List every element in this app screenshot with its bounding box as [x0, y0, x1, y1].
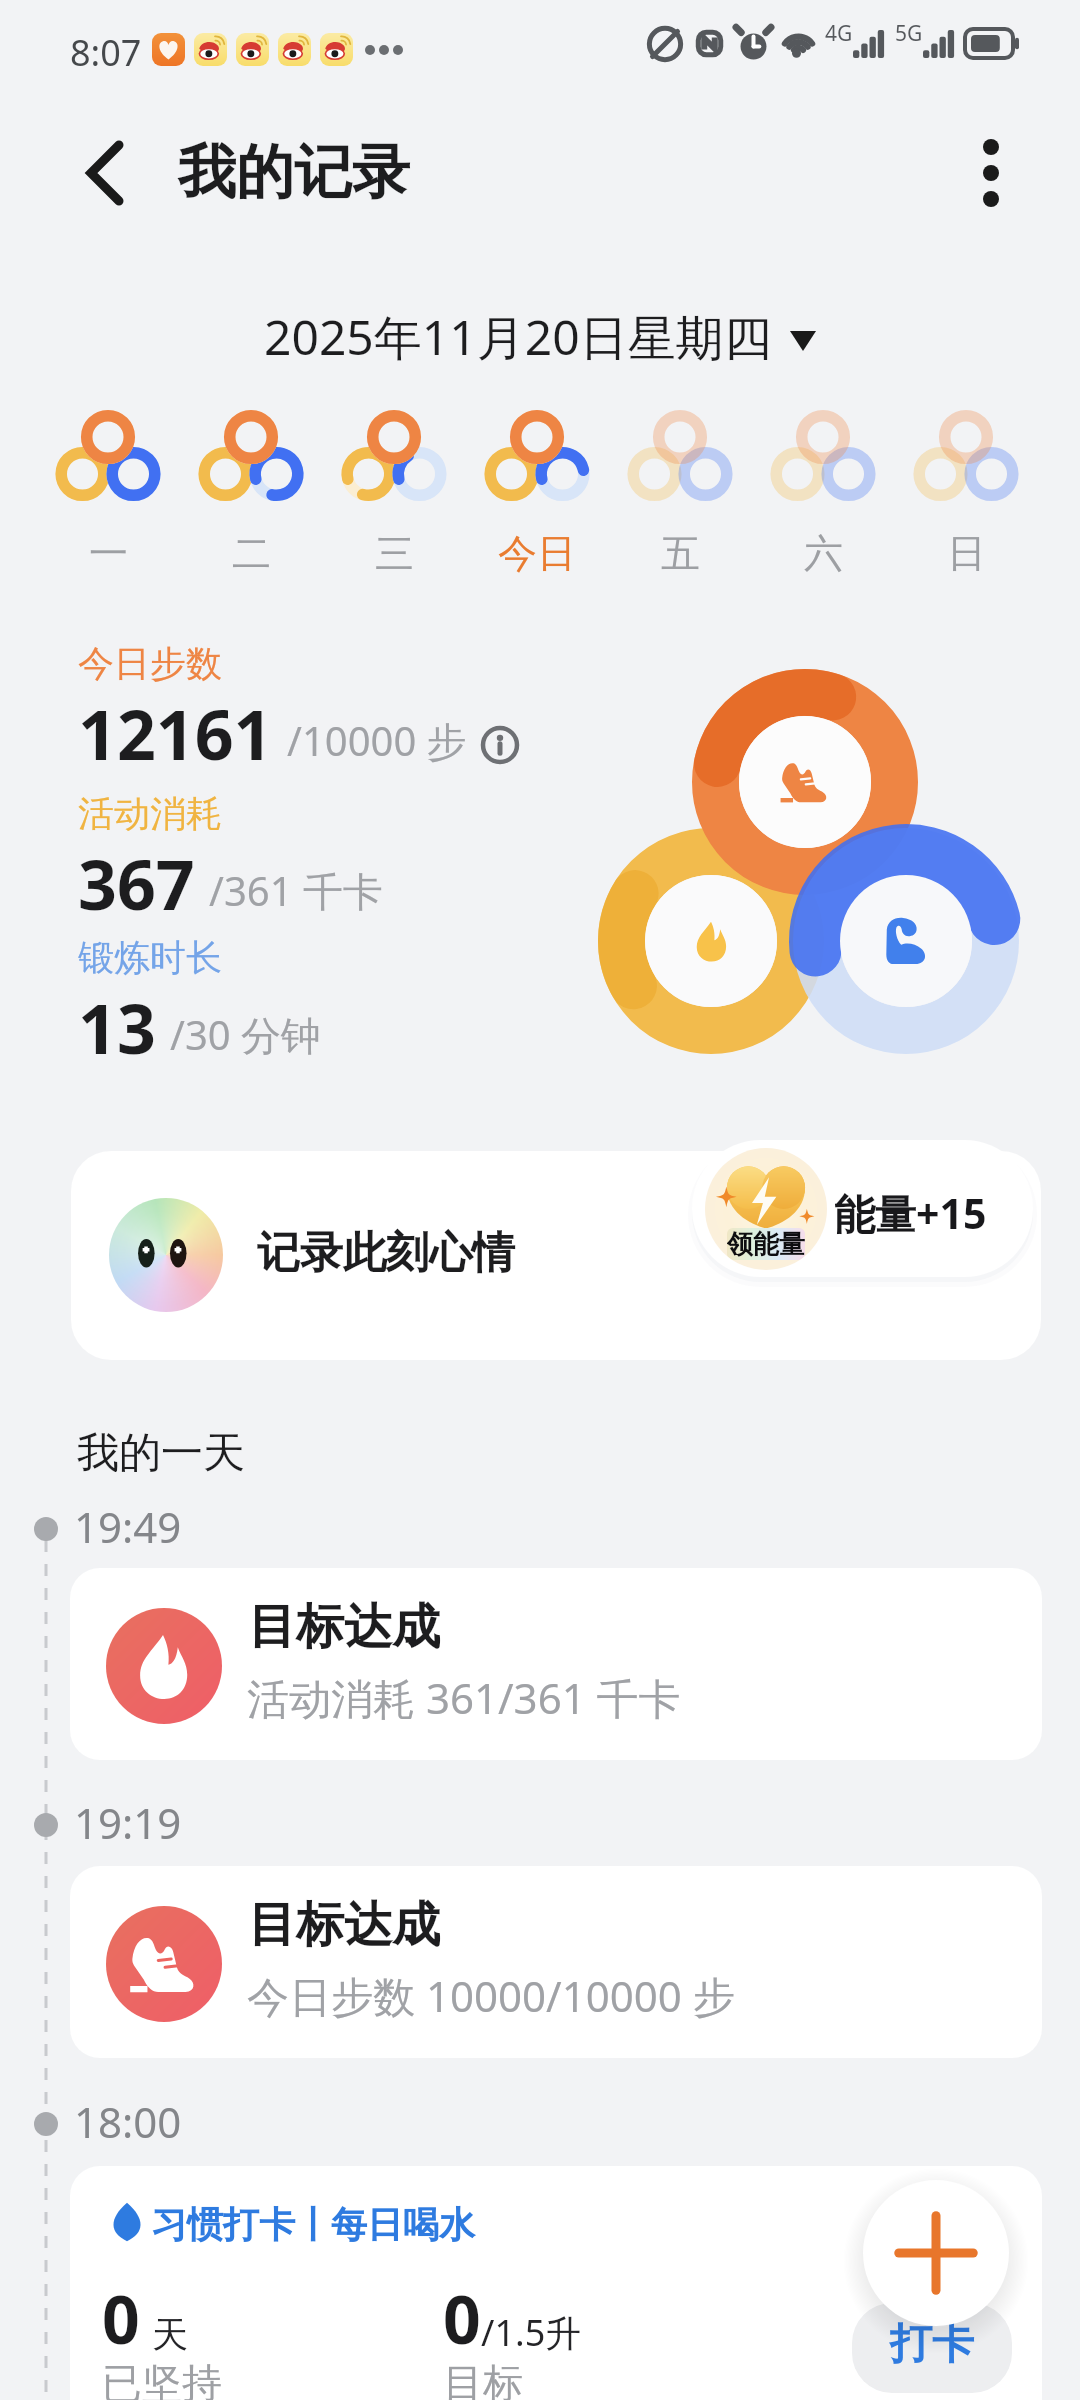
staticText: 12161: [78, 687, 273, 780]
button[interactable]: 2025年11月20日星期四: [258, 300, 822, 374]
button[interactable]: 领能量 能量+15: [692, 1140, 1033, 1277]
staticText: 打卡: [890, 2318, 974, 2371]
staticText: /361 千卡: [209, 863, 383, 918]
button[interactable]: 二: [181, 388, 321, 578]
staticText: 目标: [443, 2358, 523, 2400]
button[interactable]: 打卡: [852, 2303, 1012, 2393]
staticText: 已坚持: [102, 2358, 222, 2400]
staticText: 目标达成: [248, 1597, 440, 1657]
button[interactable]: 六: [753, 388, 893, 578]
staticText: 目标达成: [248, 1895, 440, 1955]
button[interactable]: Info: [481, 726, 519, 764]
staticText: 习惯打卡丨每日喝水: [151, 2202, 475, 2247]
staticText: 19:49: [74, 1498, 182, 1555]
staticText: 4G: [825, 19, 853, 48]
button[interactable]: 今日: [467, 388, 607, 578]
button[interactable]: 目标达成: [70, 1568, 1042, 1760]
staticText: 我的一天: [77, 1427, 245, 1480]
button[interactable]: 日: [896, 388, 1036, 578]
staticText: 我的记录: [178, 136, 410, 209]
staticText: 活动消耗 361/361 千卡: [247, 1669, 681, 1726]
staticText: 三: [375, 529, 414, 578]
staticText: 8:07: [70, 28, 142, 77]
staticText: 18:00: [74, 2093, 182, 2150]
button[interactable]: 三: [324, 388, 464, 578]
staticText: 5G: [895, 19, 923, 48]
staticText: 19:19: [74, 1794, 182, 1851]
staticText: 天: [152, 2312, 188, 2357]
button[interactable]: 打卡: [863, 2180, 1009, 2326]
staticText: 二: [232, 529, 271, 578]
staticText: /1.5升: [481, 2308, 582, 2357]
button[interactable]: More options: [948, 130, 1034, 216]
staticText: 五: [661, 529, 700, 578]
button[interactable]: 目标达成: [70, 1866, 1042, 2058]
button[interactable]: 五: [610, 388, 750, 578]
staticText: 活动消耗: [78, 791, 222, 836]
staticText: 日: [947, 529, 986, 578]
staticText: 0: [102, 2273, 140, 2363]
staticText: 六: [804, 529, 843, 578]
staticText: 367: [78, 837, 195, 930]
staticText: 今日: [498, 529, 576, 578]
button[interactable]: 记录此刻心情: [71, 1151, 1041, 1360]
button[interactable]: 习惯打卡丨每日喝水: [70, 2166, 1042, 2400]
button[interactable]: Back: [62, 130, 148, 216]
staticText: 0: [443, 2273, 481, 2363]
staticText: 今日步数 10000/10000 步: [247, 1967, 735, 2024]
staticText: 能量+15: [834, 1185, 987, 1241]
button[interactable]: 一: [38, 388, 178, 578]
staticText: /30 分钟: [170, 1007, 322, 1062]
staticText: 今日步数: [78, 641, 222, 686]
staticText: 领能量: [727, 1228, 805, 1260]
staticText: 记录此刻心情: [257, 1226, 515, 1280]
staticText: 一: [89, 529, 128, 578]
staticText: /10000 步: [287, 713, 467, 768]
staticText: 13: [78, 981, 156, 1074]
staticText: 2025年11月20日星期四: [264, 304, 772, 370]
staticText: 锻炼时长: [78, 935, 222, 980]
